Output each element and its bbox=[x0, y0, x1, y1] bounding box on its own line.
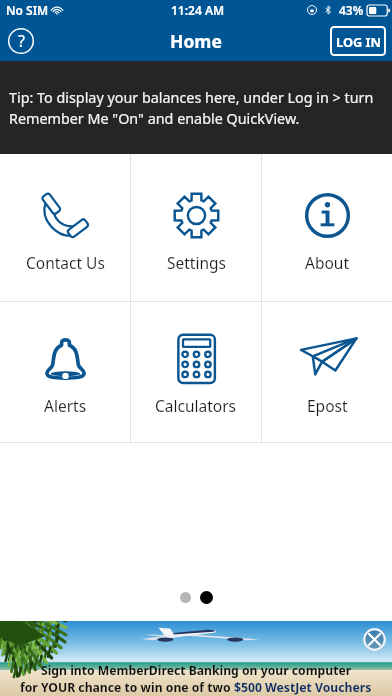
button[interactable]: Help bbox=[6, 26, 36, 56]
button[interactable]: Settings bbox=[131, 154, 261, 301]
staticText: About bbox=[305, 252, 349, 273]
staticText: 11:24 AM bbox=[171, 2, 225, 18]
staticText: Home bbox=[170, 29, 222, 53]
staticText: LOG IN bbox=[336, 33, 381, 50]
button[interactable]: Contact Us bbox=[0, 154, 130, 301]
button[interactable]: LOG IN bbox=[330, 26, 386, 56]
staticText: Contact Us bbox=[26, 252, 105, 273]
button[interactable] bbox=[180, 592, 191, 603]
button[interactable] bbox=[200, 591, 213, 604]
staticText: ? bbox=[18, 30, 25, 52]
button[interactable]: Calculators bbox=[131, 302, 261, 442]
staticText: Settings bbox=[167, 252, 226, 273]
staticText: Sign into MemberDirect Banking on your c… bbox=[41, 662, 352, 679]
button[interactable]: Epost bbox=[262, 302, 392, 442]
staticText: $500 WestJet Vouchers bbox=[234, 679, 372, 696]
staticText: 43% bbox=[339, 2, 364, 18]
button[interactable]: About bbox=[262, 154, 392, 301]
staticText: Alerts bbox=[44, 395, 87, 416]
button[interactable]: Sign into MemberDirect Banking on your c… bbox=[0, 621, 392, 696]
staticText: for YOUR chance to win one of two bbox=[20, 679, 234, 696]
staticText: No SIM bbox=[6, 2, 49, 18]
staticText: Epost bbox=[307, 395, 348, 416]
staticText: Calculators bbox=[155, 395, 237, 416]
button[interactable]: Alerts bbox=[0, 302, 130, 442]
button[interactable]: Close ad bbox=[363, 628, 386, 651]
staticText: Tip: To display your balances here, unde… bbox=[9, 88, 383, 128]
